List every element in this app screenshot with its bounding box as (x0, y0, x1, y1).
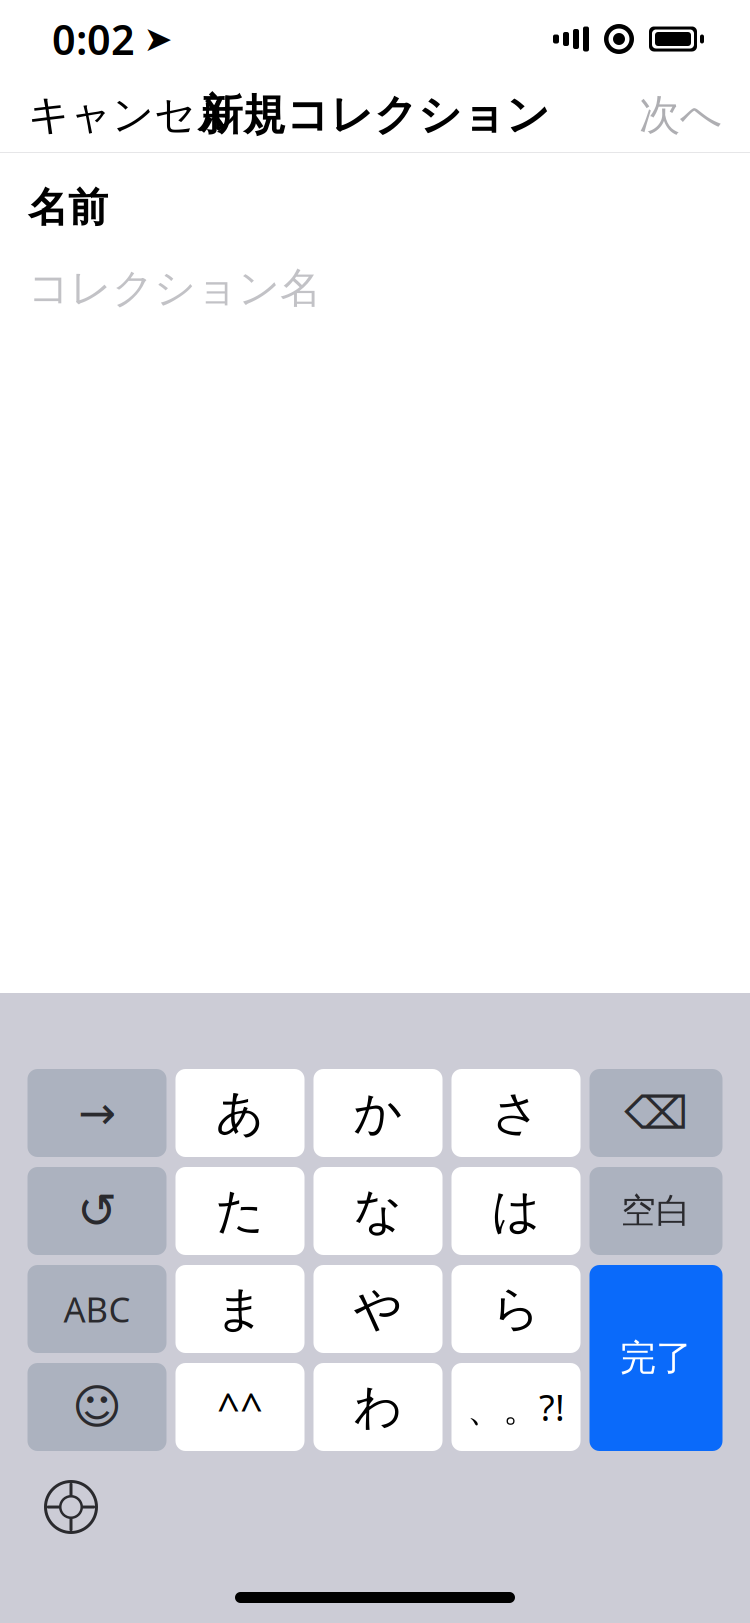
button[interactable]: た (175, 1167, 304, 1255)
button[interactable]: Emoji (27, 1363, 166, 1451)
button[interactable]: ま (175, 1265, 304, 1353)
staticText: 、。?! (467, 1383, 565, 1431)
button[interactable]: Next candidate (27, 1069, 166, 1157)
staticText: さ (491, 1083, 540, 1142)
staticText: ➤ (143, 19, 172, 59)
button[interactable]: 、。?! (451, 1363, 580, 1451)
staticText: ら (491, 1279, 540, 1338)
staticText: 完了 (620, 1336, 692, 1380)
staticText: キャンセル (28, 90, 238, 140)
button[interactable]: コレクション名 (28, 232, 722, 318)
button[interactable]: は (451, 1167, 580, 1255)
button[interactable]: ABC (27, 1265, 166, 1353)
staticText: 次へ (639, 90, 722, 140)
staticText: は (491, 1181, 540, 1240)
button[interactable]: 次へ (611, 72, 750, 158)
staticText: や (353, 1279, 402, 1338)
staticText: わ (353, 1377, 402, 1436)
button[interactable]: ^^ (175, 1363, 304, 1451)
staticText: あ (215, 1083, 264, 1142)
button[interactable]: Switch keyboard (28, 1464, 114, 1550)
button[interactable]: 完了 (589, 1265, 722, 1451)
button[interactable]: な (313, 1167, 442, 1255)
button[interactable]: ら (451, 1265, 580, 1353)
staticText: ↺ (77, 1184, 117, 1238)
button[interactable]: か (313, 1069, 442, 1157)
button[interactable]: さ (451, 1069, 580, 1157)
staticText: ⌫ (624, 1087, 688, 1139)
staticText: 空白 (621, 1190, 691, 1232)
staticText: か (353, 1083, 402, 1142)
staticText: ^^ (217, 1380, 263, 1433)
button[interactable]: キャンセル (0, 72, 266, 158)
staticText: → (78, 1087, 116, 1139)
staticText: コレクション名 (28, 263, 321, 313)
button[interactable]: Delete (589, 1069, 722, 1157)
staticText: な (353, 1181, 402, 1240)
button[interactable]: あ (175, 1069, 304, 1157)
staticText: た (215, 1181, 264, 1240)
button[interactable]: や (313, 1265, 442, 1353)
staticText: 新規コレクション (200, 89, 550, 141)
button[interactable]: Undo (27, 1167, 166, 1255)
staticText: ま (215, 1279, 264, 1338)
staticText: ABC (63, 1286, 130, 1332)
button[interactable]: わ (313, 1363, 442, 1451)
staticText: ☺ (72, 1380, 122, 1434)
button[interactable]: Space (589, 1167, 722, 1255)
staticText: 0:02 (52, 12, 135, 66)
staticText: 名前 (28, 183, 108, 232)
